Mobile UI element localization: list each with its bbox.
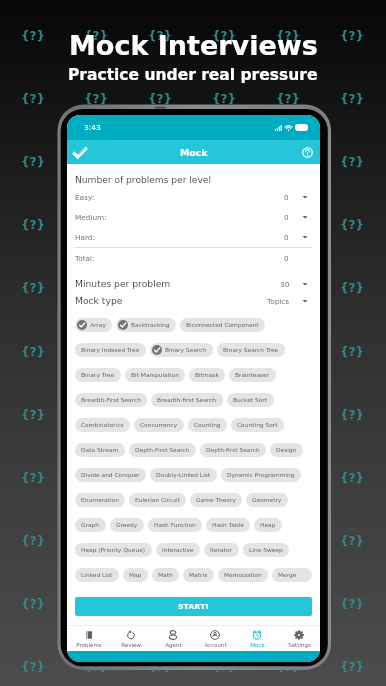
button[interactable]: Geometry (246, 493, 288, 507)
staticText: {?} (340, 597, 365, 611)
staticText: {?} (148, 281, 173, 295)
button[interactable]: Eulerian Circuit (129, 493, 186, 507)
button[interactable]: Graph (75, 518, 106, 532)
button[interactable]: Hard: (75, 227, 312, 247)
button[interactable]: Binary Search (150, 343, 213, 357)
button[interactable]: Matrix (183, 568, 214, 582)
staticText: {?} (276, 471, 301, 485)
staticText: Hard: (75, 233, 95, 241)
button[interactable]: Heap (Priority Queue) (75, 543, 152, 557)
button[interactable]: Mark all done (71, 143, 89, 161)
button[interactable]: Data Stream (75, 443, 125, 457)
button[interactable]: Binary Tree (75, 368, 121, 382)
button[interactable]: Heap (254, 518, 282, 532)
staticText: Practice under real pressure (68, 66, 318, 84)
button[interactable]: Counting Sort (231, 418, 284, 432)
button[interactable]: Map (123, 568, 148, 582)
button[interactable]: Agent (152, 626, 194, 651)
staticText: Interactive (162, 547, 194, 554)
staticText: {?} (148, 471, 173, 485)
button[interactable]: Help (298, 143, 316, 161)
staticText: 30 (280, 280, 290, 288)
button[interactable]: Design (270, 443, 303, 457)
staticText: Game Theory (196, 497, 236, 504)
staticText: Binary Indexed Tree (81, 347, 140, 354)
staticText: {?} (84, 281, 109, 295)
button[interactable]: Minutes per problem (75, 275, 312, 292)
staticText: {?} (21, 92, 46, 106)
button[interactable]: Combinatorics (75, 418, 130, 432)
staticText: Memoization (224, 572, 262, 579)
button[interactable]: Total: (75, 248, 312, 268)
staticText: Bit Manipulation (131, 372, 179, 379)
button[interactable]: Linked List (75, 568, 119, 582)
staticText: {?} (212, 29, 237, 43)
button[interactable]: Bucket Sort (227, 393, 274, 407)
button[interactable]: Easy: (75, 187, 312, 207)
staticText: {?} (21, 155, 46, 169)
button[interactable]: START! (75, 597, 312, 616)
button[interactable]: Breadth-First Search (75, 393, 147, 407)
button[interactable]: Mock type (75, 292, 312, 309)
button[interactable]: Account (194, 626, 236, 651)
button[interactable]: Binary Indexed Tree (75, 343, 146, 357)
button[interactable]: Iterator (204, 543, 239, 557)
button[interactable]: Divide and Conquer (75, 468, 146, 482)
button[interactable]: Array (75, 318, 112, 332)
button[interactable]: Medium: (75, 207, 312, 227)
button[interactable]: Settings (278, 626, 320, 651)
button[interactable]: Binary Search Tree (217, 343, 285, 357)
button[interactable]: Greedy (110, 518, 144, 532)
button[interactable]: Biconnected Component (180, 318, 265, 332)
staticText: 0 (284, 233, 289, 241)
button[interactable]: Mock (236, 626, 278, 651)
staticText: Binary Tree (81, 372, 115, 379)
staticText: {?} (21, 281, 46, 295)
button[interactable]: Counting (188, 418, 227, 432)
button[interactable]: Depth-First Search (129, 443, 196, 457)
staticText: {?} (276, 218, 301, 232)
button[interactable]: Interactive (156, 543, 200, 557)
staticText: Array (90, 322, 106, 329)
button[interactable]: Line Sweep (243, 543, 289, 557)
button[interactable]: Bit Manipulation (125, 368, 185, 382)
staticText: 0 (284, 213, 289, 221)
staticText: {?} (212, 345, 237, 359)
button[interactable]: Hash Function (148, 518, 202, 532)
button[interactable]: Doubly-Linked List (150, 468, 217, 482)
button[interactable]: Hash Table (206, 518, 250, 532)
button[interactable]: Merge Sort (272, 568, 312, 582)
staticText: Mock (180, 147, 208, 158)
staticText: Mock Interviews (69, 30, 318, 61)
staticText: {?} (148, 534, 173, 548)
button[interactable]: Backtracking (116, 318, 176, 332)
staticText: Linked List (81, 572, 113, 579)
button[interactable]: Dynamic Programming (221, 468, 301, 482)
staticText: {?} (340, 471, 365, 485)
staticText: {?} (148, 408, 173, 422)
button[interactable]: Enumeration (75, 493, 125, 507)
button[interactable]: Breadth-first Search (151, 393, 223, 407)
staticText: {?} (21, 534, 46, 548)
staticText: {?} (276, 281, 301, 295)
staticText: Binary Search Tree (223, 347, 279, 354)
button[interactable]: Memoization (218, 568, 268, 582)
button[interactable]: Brainteaser (229, 368, 276, 382)
staticText: Medium: (75, 213, 107, 221)
staticText: {?} (21, 660, 46, 674)
staticText: 3:43 (84, 123, 101, 132)
staticText: {?} (21, 345, 46, 359)
staticText: {?} (148, 345, 173, 359)
staticText: {?} (84, 408, 109, 422)
button[interactable]: Depth-first Search (200, 443, 266, 457)
staticText: Bucket Sort (233, 397, 268, 404)
button[interactable]: Review (110, 626, 152, 651)
button[interactable]: Math (152, 568, 179, 582)
button[interactable]: Problems (67, 626, 110, 651)
button[interactable]: Game Theory (190, 493, 242, 507)
staticText: 0 (284, 254, 289, 262)
button[interactable]: Concurrency (134, 418, 184, 432)
staticText: Matrix (189, 572, 208, 579)
button[interactable]: Bitmask (189, 368, 225, 382)
